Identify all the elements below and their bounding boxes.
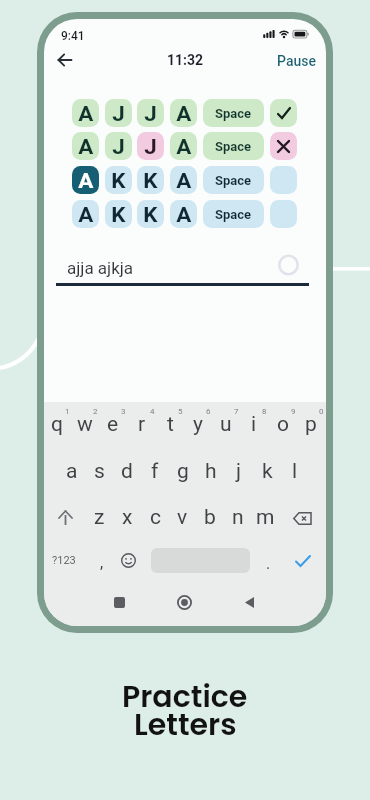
staticText: b [204, 505, 216, 530]
button[interactable] [51, 505, 80, 531]
staticText: j [236, 459, 242, 484]
button[interactable] [270, 200, 297, 228]
button[interactable] [238, 591, 261, 614]
button[interactable]: i [240, 411, 268, 437]
staticText: o [277, 412, 289, 437]
button[interactable]: a [58, 458, 86, 484]
button[interactable]: z [85, 504, 113, 530]
staticText: a [66, 459, 78, 484]
staticText: k [262, 459, 273, 484]
staticText: t [167, 412, 174, 437]
button[interactable]: w [71, 411, 99, 437]
button[interactable]: u [212, 411, 240, 437]
button[interactable]: y [184, 411, 212, 437]
button[interactable]: s [85, 458, 113, 484]
staticText: Practice [122, 676, 248, 712]
staticText: g [177, 459, 189, 484]
button[interactable]: K [105, 166, 132, 194]
button[interactable]: j [225, 458, 253, 484]
staticText: f [151, 459, 159, 484]
button[interactable]: K [137, 200, 164, 228]
button[interactable]: c [141, 504, 169, 530]
staticText: w [77, 412, 93, 437]
button[interactable]: m [251, 504, 279, 530]
button[interactable] [287, 505, 317, 531]
button[interactable] [289, 549, 317, 573]
button[interactable]: h [197, 458, 225, 484]
button[interactable]: J [105, 99, 132, 127]
button[interactable]: e [99, 411, 127, 437]
staticText: A [176, 135, 192, 158]
staticText: u [220, 412, 232, 437]
button[interactable]: q [44, 411, 71, 437]
button[interactable]: x [113, 504, 141, 530]
staticText: n [232, 505, 244, 530]
button[interactable]: k [253, 458, 281, 484]
staticText: Space [215, 139, 252, 154]
button[interactable]: p [297, 411, 325, 437]
button[interactable]: t [156, 411, 184, 437]
button[interactable]: d [113, 458, 141, 484]
button[interactable]: J [137, 99, 164, 127]
button[interactable]: b [196, 504, 224, 530]
button[interactable]: f [141, 458, 169, 484]
staticText: Pause [277, 53, 316, 69]
staticText: A [78, 203, 94, 226]
staticText: , [100, 553, 104, 572]
staticText: 9 [291, 407, 296, 416]
button[interactable]: Space [203, 132, 264, 160]
button[interactable]: A [170, 132, 197, 160]
button[interactable] [270, 132, 297, 160]
button[interactable]: . [254, 550, 282, 576]
staticText: K [143, 169, 158, 192]
staticText: 3 [121, 407, 126, 416]
staticText: p [305, 412, 317, 437]
staticText: 1 [65, 407, 70, 416]
staticText: y [193, 412, 203, 437]
staticText: ajja ajkja [67, 258, 134, 278]
staticText: z [94, 505, 105, 530]
button[interactable] [173, 591, 196, 614]
button[interactable] [270, 166, 297, 194]
button[interactable] [118, 549, 139, 571]
button[interactable]: v [168, 504, 196, 530]
button[interactable]: o [269, 411, 297, 437]
staticText: Letters [134, 704, 237, 740]
staticText: 2 [93, 407, 98, 416]
button[interactable]: Space [203, 166, 264, 194]
button[interactable]: J [105, 132, 132, 160]
staticText: K [111, 203, 126, 226]
button[interactable]: ?123 [48, 547, 79, 573]
button[interactable]: A [72, 200, 99, 228]
staticText: J [112, 102, 126, 125]
button[interactable]: Space [203, 200, 264, 228]
button[interactable]: A [72, 99, 99, 127]
button[interactable]: r [128, 411, 156, 437]
button[interactable]: K [105, 200, 132, 228]
button[interactable]: g [169, 458, 197, 484]
button[interactable]: A [72, 132, 99, 160]
button[interactable] [270, 99, 297, 127]
button[interactable] [108, 591, 131, 614]
staticText: J [144, 135, 158, 158]
staticText: . [266, 554, 271, 573]
staticText: A [176, 203, 192, 226]
button[interactable]: K [137, 166, 164, 194]
button[interactable]: A [170, 99, 197, 127]
button[interactable]: Space [203, 99, 264, 127]
staticText: q [51, 412, 63, 437]
button[interactable]: J [137, 132, 164, 160]
staticText: A [78, 102, 94, 125]
staticText: x [122, 505, 133, 530]
button[interactable]: l [281, 458, 309, 484]
button[interactable]: , [88, 549, 116, 575]
button[interactable]: n [224, 504, 252, 530]
button[interactable]: A [170, 200, 197, 228]
button[interactable]: A [72, 166, 99, 194]
button[interactable]: A [170, 166, 197, 194]
button[interactable]: Pause [266, 51, 316, 71]
button[interactable] [52, 49, 78, 71]
staticText: J [112, 135, 126, 158]
staticText: h [205, 459, 217, 484]
